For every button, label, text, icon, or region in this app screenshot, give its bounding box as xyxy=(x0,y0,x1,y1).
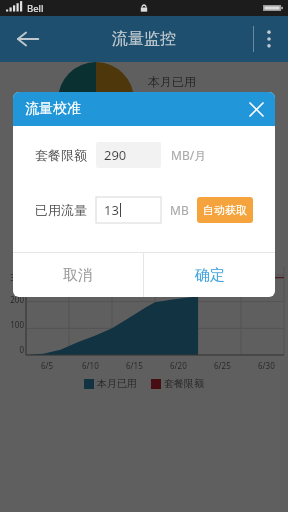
staticText: 6/30 xyxy=(258,360,275,371)
button[interactable]: 13 xyxy=(96,197,161,223)
staticText: 本月已用 xyxy=(148,74,196,89)
button[interactable]: 确定 xyxy=(144,253,275,297)
staticText: 自动获取 xyxy=(203,203,247,217)
staticText: 6/10 xyxy=(82,360,99,371)
staticText: 200 xyxy=(0,294,24,305)
staticText: 套餐限额 xyxy=(35,147,87,163)
staticText: 0 xyxy=(0,344,24,355)
button[interactable]: More options xyxy=(254,19,284,59)
button[interactable]: 290 xyxy=(96,142,161,168)
button[interactable]: 取消 xyxy=(13,253,143,297)
staticText: 100 xyxy=(0,319,24,330)
staticText: 13 xyxy=(104,201,119,219)
staticText: 本月已用 xyxy=(97,377,137,390)
staticText: 6/5 xyxy=(41,360,54,371)
staticText: 流量监控 xyxy=(112,29,176,49)
button[interactable]: Close xyxy=(241,94,271,124)
staticText: MB/月 xyxy=(171,147,207,163)
staticText: 6/15 xyxy=(126,360,143,371)
staticText: Bell xyxy=(27,2,44,15)
button[interactable]: Back xyxy=(8,19,48,59)
staticText: 取消 xyxy=(63,266,93,285)
staticText: 300 xyxy=(0,272,24,283)
staticText: 已用流量 xyxy=(35,202,87,218)
staticText: 6/25 xyxy=(214,360,231,371)
button[interactable]: 自动获取 xyxy=(197,197,253,223)
staticText: 确定 xyxy=(195,266,225,285)
staticText: 套餐限额 xyxy=(164,377,204,390)
staticText: 6/20 xyxy=(170,360,187,371)
staticText: 流量校准 xyxy=(25,100,81,118)
staticText: 290 xyxy=(104,146,127,164)
staticText: MB xyxy=(170,202,189,218)
